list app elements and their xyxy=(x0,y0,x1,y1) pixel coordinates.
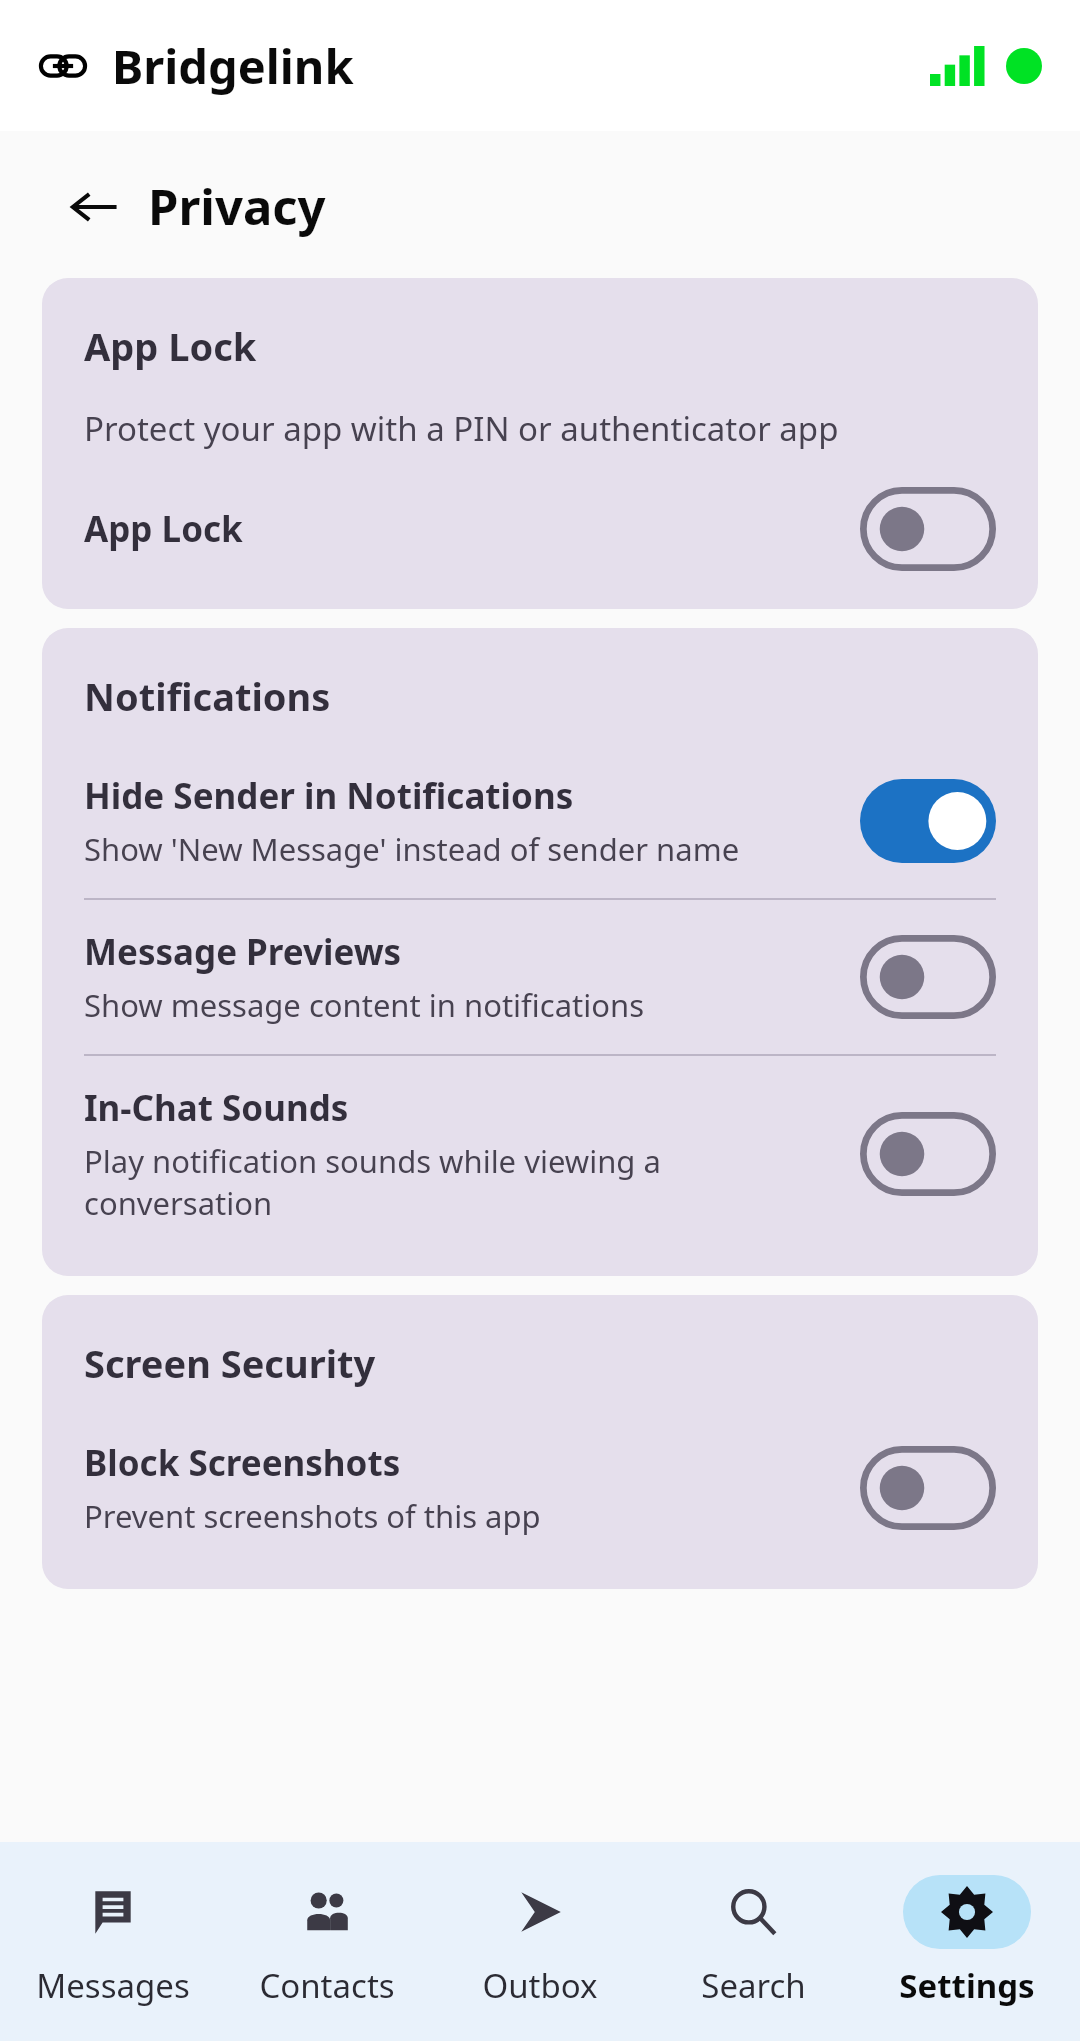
button[interactable]: Switch off xyxy=(860,1112,996,1196)
button[interactable]: In-Chat Sounds xyxy=(84,1056,996,1252)
button[interactable]: Block Screenshots xyxy=(84,1411,996,1565)
button[interactable]: Search xyxy=(653,1867,853,2016)
button[interactable]: App Lock xyxy=(84,487,996,571)
button[interactable]: Switch off xyxy=(860,935,996,1019)
button[interactable]: Switch on xyxy=(860,779,996,863)
staticText: App Lock xyxy=(84,505,243,553)
button[interactable]: Contacts xyxy=(227,1867,427,2016)
staticText: Outbox xyxy=(482,1963,598,2008)
button[interactable]: Hide Sender in Notifications xyxy=(84,744,996,898)
button[interactable]: Message Previews xyxy=(84,900,996,1054)
staticText: Bridgelink xyxy=(112,34,354,98)
staticText: Notifications xyxy=(84,670,331,722)
staticText: In-Chat Sounds xyxy=(84,1084,349,1132)
staticText: Screen Security xyxy=(84,1337,376,1389)
button[interactable]: Messages xyxy=(13,1867,213,2016)
staticText: Hide Sender in Notifications xyxy=(84,772,574,820)
staticText: Privacy xyxy=(148,173,326,240)
button[interactable]: Switch off xyxy=(860,487,996,571)
staticText: Play notification sounds while viewing a… xyxy=(84,1140,836,1224)
staticText: Settings xyxy=(899,1963,1035,2008)
staticText: Messages xyxy=(36,1963,190,2008)
staticText: Search xyxy=(701,1963,806,2008)
button[interactable]: Settings xyxy=(867,1867,1067,2016)
staticText: Block Screenshots xyxy=(84,1439,401,1487)
staticText: App Lock xyxy=(84,320,257,372)
button[interactable]: Switch off xyxy=(860,1446,996,1530)
staticText: Message Previews xyxy=(84,928,402,976)
button[interactable]: Outbox xyxy=(440,1867,640,2016)
staticText: Protect your app with a PIN or authentic… xyxy=(84,406,839,451)
staticText: Show 'New Message' instead of sender nam… xyxy=(84,828,740,870)
other: Bridgelink xyxy=(40,43,86,89)
staticText: Contacts xyxy=(259,1963,395,2008)
staticText: Prevent screenshots of this app xyxy=(84,1495,541,1537)
staticText: Show message content in notifications xyxy=(84,984,644,1026)
button[interactable]: Back xyxy=(62,175,126,239)
